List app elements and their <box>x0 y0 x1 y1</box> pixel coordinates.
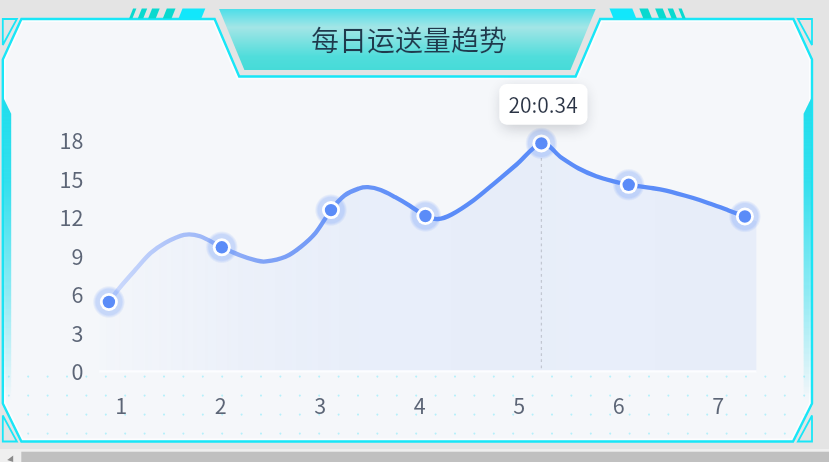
button[interactable]: Data point 20:0.34 <box>499 84 588 125</box>
button[interactable]: Home <box>21 448 829 462</box>
button[interactable]: Daily delivery volume trend chart <box>3 19 812 442</box>
button[interactable]: Back <box>0 448 21 462</box>
